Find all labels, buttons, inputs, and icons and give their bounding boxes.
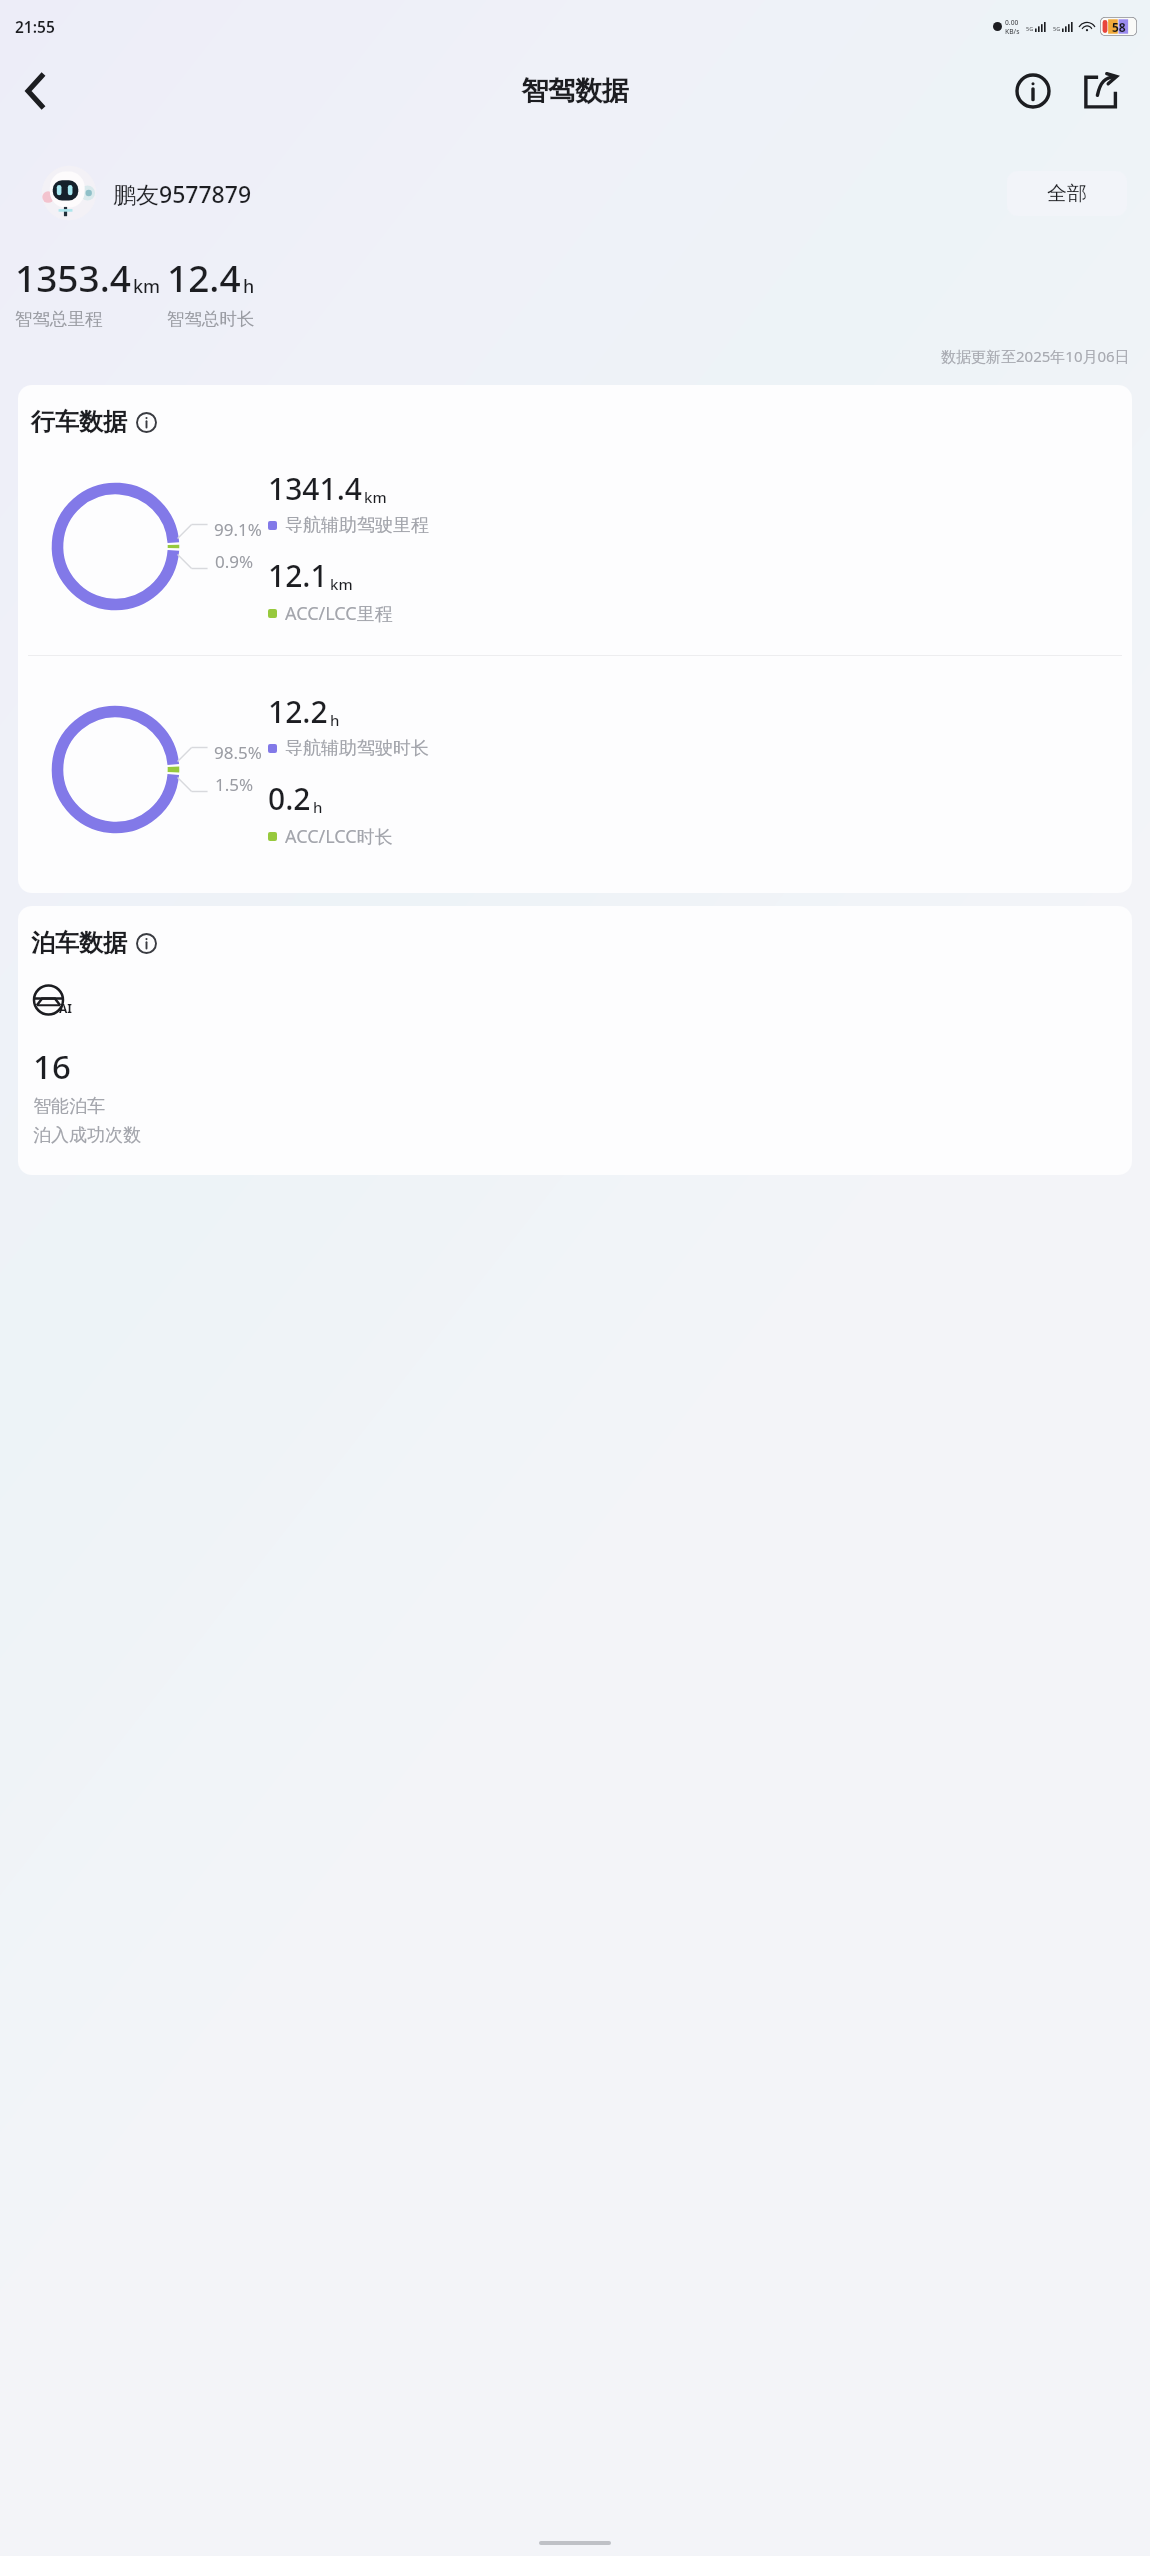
staticText: 21:55 [15, 16, 55, 37]
staticText: 智能泊车 [33, 1095, 105, 1118]
staticText: 58 [1112, 19, 1126, 35]
staticText: 5G [1053, 25, 1061, 32]
staticText: 数据更新至2025年10月06日 [941, 346, 1130, 366]
button[interactable]: 全部 [1007, 171, 1127, 216]
staticText: h [330, 710, 340, 730]
staticText: km [364, 487, 387, 507]
staticText: 全部 [1047, 181, 1087, 206]
staticText: AI [59, 1000, 72, 1016]
staticText: 导航辅助驾驶里程 [285, 514, 429, 537]
staticText: 泊入成功次数 [33, 1124, 141, 1147]
staticText: 0.2 [268, 778, 311, 819]
button[interactable]: Back [8, 63, 64, 119]
staticText: 12.2 [268, 691, 328, 732]
staticText: 0.00 [1005, 18, 1019, 27]
button[interactable]: 泊车数据 [31, 928, 157, 958]
button[interactable]: Share [1072, 62, 1130, 120]
staticText: 0.9% [215, 550, 254, 573]
button[interactable]: 行车数据 [31, 407, 157, 437]
staticText: 1341.4 [268, 468, 362, 509]
staticText: 98.5% [214, 741, 262, 764]
staticText: 12.1 [268, 555, 328, 596]
staticText: 1353.4 [15, 252, 131, 302]
staticText: km [133, 274, 161, 299]
staticText: 导航辅助驾驶时长 [285, 737, 429, 760]
staticText: 12.4 [167, 252, 241, 302]
staticText: 5G [1026, 25, 1034, 32]
staticText: 鹏友9577879 [113, 178, 252, 209]
staticText: h [313, 797, 323, 817]
staticText: ACC/LCC时长 [285, 824, 393, 849]
staticText: h [243, 274, 255, 299]
staticText: 泊车数据 [31, 928, 127, 958]
staticText: 99.1% [214, 518, 262, 541]
staticText: 1.5% [215, 773, 254, 796]
staticText: 行车数据 [31, 407, 127, 437]
staticText: 智驾总里程 [15, 308, 103, 330]
staticText: km [330, 574, 353, 594]
staticText: KB/s [1005, 27, 1020, 36]
staticText: 智驾数据 [521, 74, 629, 108]
staticText: 16 [33, 1044, 71, 1089]
staticText: 智驾总时长 [167, 308, 255, 330]
button[interactable]: Information [1004, 62, 1062, 120]
staticText: ACC/LCC里程 [285, 601, 393, 626]
